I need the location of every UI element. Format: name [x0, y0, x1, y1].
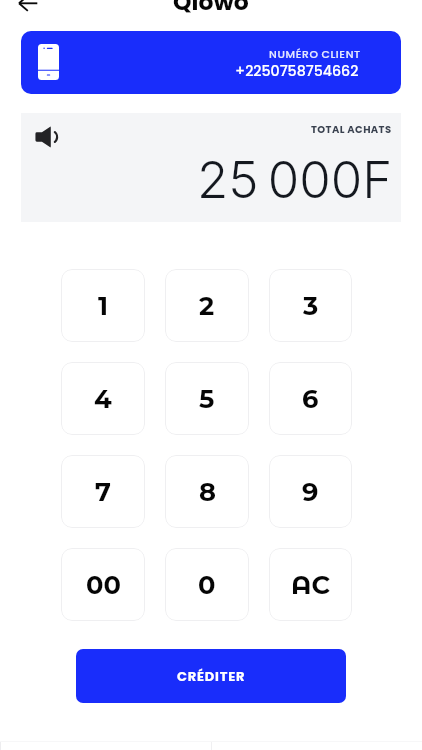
staticText: AC	[291, 569, 331, 600]
staticText: 4	[94, 383, 112, 414]
staticText: CRÉDITER	[177, 667, 246, 685]
staticText: 0	[198, 569, 216, 600]
button[interactable]: 2	[165, 269, 249, 342]
button[interactable]: NUMÉRO CLIENT	[21, 31, 401, 94]
staticText: Qlowo	[173, 0, 249, 18]
button[interactable]: 9	[269, 455, 352, 528]
staticText: +2250758754662	[235, 61, 359, 81]
staticText: 3	[303, 290, 319, 321]
button[interactable]: 3	[269, 269, 352, 342]
button[interactable]: 8	[165, 455, 249, 528]
staticText: 25 000F	[197, 149, 393, 211]
staticText: 1	[98, 290, 109, 321]
button[interactable]: Back	[5, 0, 51, 33]
staticText: 6	[302, 383, 319, 414]
button[interactable]: 0	[165, 548, 249, 621]
staticText: 00	[86, 569, 121, 600]
staticText: 5	[199, 383, 215, 414]
staticText: 2	[199, 290, 215, 321]
staticText: TOTAL ACHATS	[311, 122, 392, 136]
button[interactable]: 7	[61, 455, 145, 528]
staticText: 9	[302, 476, 319, 507]
button[interactable]: Sound	[31, 122, 61, 152]
staticText: 8	[199, 476, 216, 507]
button[interactable]: 4	[61, 362, 145, 435]
button[interactable]: CRÉDITER	[76, 649, 346, 703]
button[interactable]: 00	[61, 548, 145, 621]
staticText: 7	[95, 476, 111, 507]
button[interactable]: 1	[61, 269, 145, 342]
button[interactable]: AC	[269, 548, 352, 621]
button[interactable]: 6	[269, 362, 352, 435]
staticText: NUMÉRO CLIENT	[269, 47, 361, 62]
button[interactable]: 5	[165, 362, 249, 435]
